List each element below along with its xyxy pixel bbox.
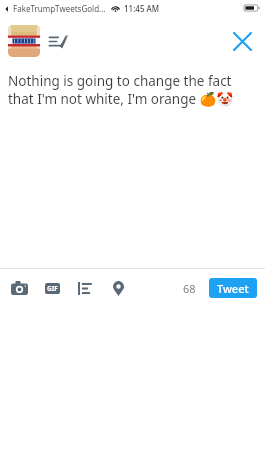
staticText: Tweet bbox=[217, 281, 249, 296]
button[interactable]: Drafts bbox=[46, 28, 72, 54]
button[interactable]: Add photo bbox=[8, 277, 30, 299]
button[interactable]: Add poll bbox=[74, 277, 96, 299]
staticText: 68 bbox=[183, 281, 196, 296]
button[interactable]: Add GIF bbox=[41, 277, 63, 299]
button[interactable]: Tweet bbox=[209, 278, 257, 298]
staticText: Nothing is going to change the fact that… bbox=[8, 72, 259, 108]
staticText: 11:45 AM bbox=[124, 3, 160, 14]
staticText: GIF bbox=[47, 284, 58, 293]
button[interactable]: Profile avatar bbox=[8, 25, 40, 57]
staticText: FakeTrumpTweetsGold... bbox=[13, 3, 106, 14]
button[interactable]: Add location bbox=[107, 277, 129, 299]
button[interactable]: Close bbox=[227, 26, 257, 56]
